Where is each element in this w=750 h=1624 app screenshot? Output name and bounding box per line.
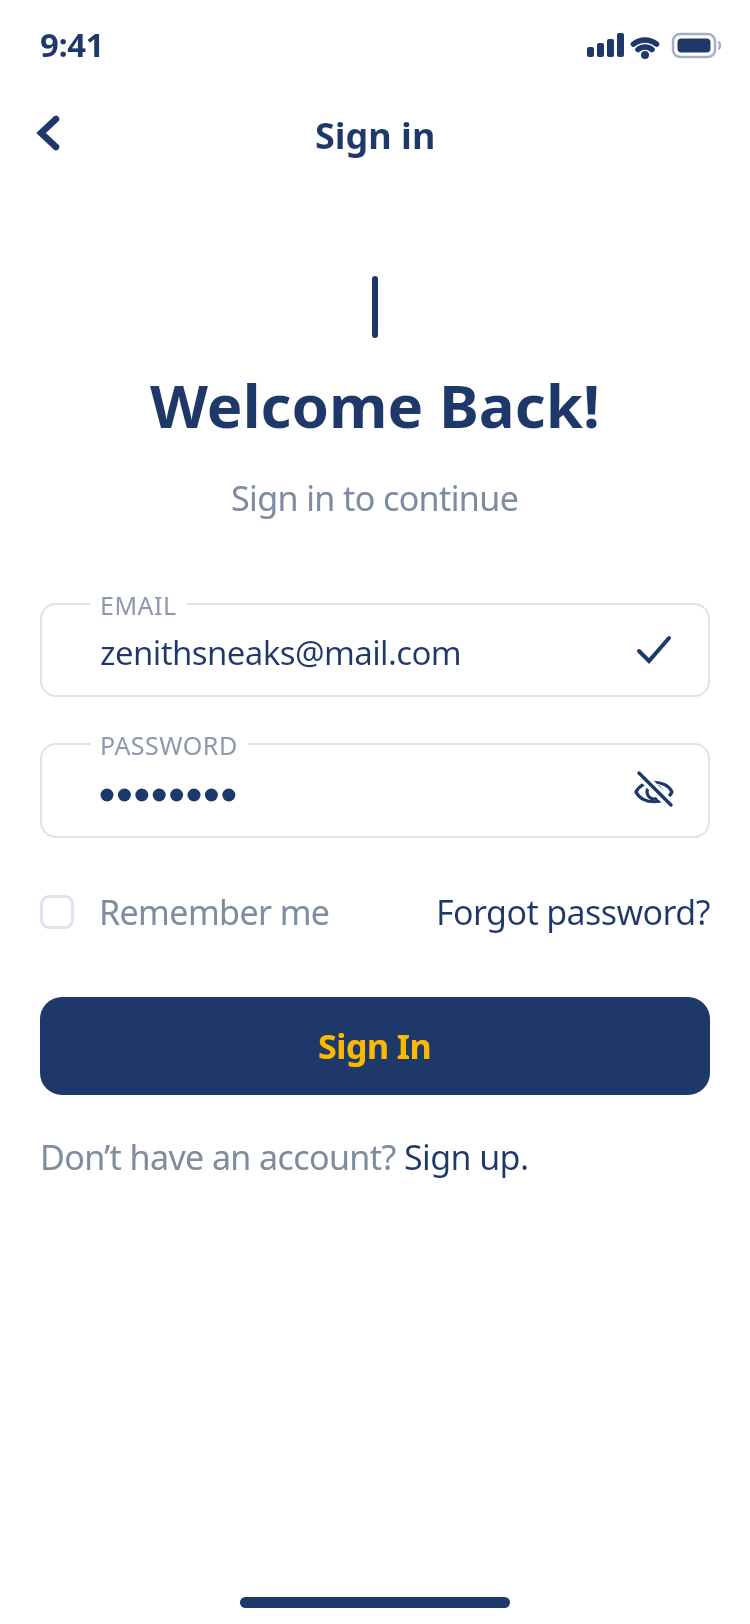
staticText: EMAIL xyxy=(100,588,177,622)
button[interactable]: Sign In xyxy=(40,997,710,1095)
staticText: Don’t have an account? xyxy=(40,1134,404,1180)
staticText: Sign In xyxy=(318,1023,432,1069)
staticText: zenithsneaks@mail.com xyxy=(100,630,462,675)
button[interactable]: Remember me xyxy=(40,889,330,935)
button[interactable]: zenithsneaks@mail.com xyxy=(40,603,710,697)
staticText: Welcome Back! xyxy=(150,364,600,446)
staticText: Sign in to continue xyxy=(231,475,519,521)
staticText: Sign in xyxy=(315,111,436,160)
staticText: 9:41 xyxy=(40,22,104,67)
button[interactable]: Sign up. xyxy=(404,1134,529,1180)
staticText: PASSWORD xyxy=(100,728,238,762)
button[interactable] xyxy=(22,107,74,159)
button[interactable] xyxy=(633,769,677,813)
button[interactable]: Forgot password? xyxy=(436,889,710,935)
button[interactable] xyxy=(40,743,710,838)
staticText: Remember me xyxy=(99,889,330,935)
